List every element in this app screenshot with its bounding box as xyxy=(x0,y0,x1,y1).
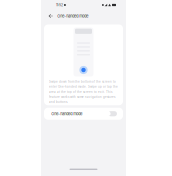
staticText: Swipe down from the bottom of the screen… xyxy=(49,80,118,104)
button[interactable]: One-handed mode xyxy=(44,108,123,120)
button[interactable]: Back xyxy=(48,13,54,18)
staticText: One-handed mode xyxy=(51,111,82,116)
staticText: One-handed mode xyxy=(57,14,88,18)
staticText: 11:52 xyxy=(56,3,63,7)
